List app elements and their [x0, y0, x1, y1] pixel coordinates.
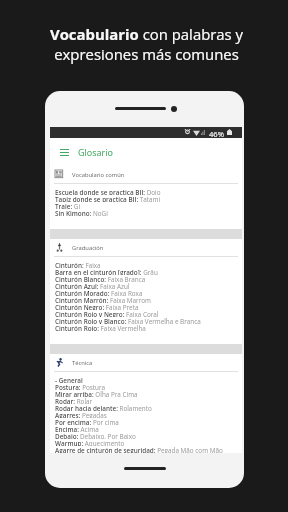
button[interactable]: Vocabulario común: [54, 166, 242, 183]
staticText: Escuela donde se practica BJJ: Dojo: [55, 188, 161, 195]
staticText: Debajo: Debaixo, Por Baixo: [55, 432, 136, 439]
staticText: Técnica: [72, 359, 93, 367]
staticText: 46%: [209, 129, 224, 139]
button[interactable]: Menú: [57, 145, 71, 159]
staticText: Rodar hacia delante: Rolamento: [55, 404, 152, 411]
staticText: Cinturón Morado: Faixa Roxa: [55, 289, 143, 296]
staticText: Vocabulario con palabras y expresiones m…: [27, 24, 266, 64]
staticText: Cinturón Negro: Faixa Preta: [55, 303, 139, 310]
staticText: Cinturón Blanco: Faixa Branca: [55, 275, 146, 282]
staticText: - General: [55, 376, 83, 383]
staticText: Cinturón Rojo y Negro: Faixa Coral: [55, 310, 159, 317]
button[interactable]: Graduación: [54, 239, 242, 256]
staticText: Postura: Postura: [55, 383, 106, 390]
button[interactable]: Técnica: [54, 354, 242, 371]
staticText: Glosario: [78, 146, 113, 158]
staticText: Mirar arriba: Olha Pra Cima: [55, 390, 138, 397]
staticText: Warmup: Aquecimento: [55, 439, 125, 446]
staticText: Agarres: Pegadas: [55, 411, 107, 418]
staticText: Rodar: Rolar: [55, 397, 93, 404]
staticText: Por encima: Por cima: [55, 418, 119, 425]
staticText: Encima: Acima: [55, 425, 99, 432]
staticText: Barra en el cinturón [grado]: Grāu: [55, 268, 158, 275]
staticText: Cinturón Azul: Faixa Azul: [55, 282, 130, 289]
staticText: Cinturón Marrón: Faixa Marrom: [55, 296, 151, 303]
staticText: Vocabulario común: [72, 171, 125, 179]
staticText: Tapiz donde se practica BJJ: Tatami: [55, 195, 161, 202]
staticText: Cinturón Rojo: Faixa Vermelha: [55, 324, 146, 331]
staticText: Graduación: [72, 244, 104, 252]
staticText: Cinturón Rojo y Blanco: Faixa Vermelha e…: [55, 317, 201, 324]
staticText: Agarre de cinturón de seguridad: Pegada …: [55, 446, 223, 453]
staticText: Traje: Gi: [55, 202, 81, 209]
staticText: Cinturón: Faixa: [55, 261, 101, 268]
staticText: Sin Kimono: NoGi: [55, 209, 108, 216]
